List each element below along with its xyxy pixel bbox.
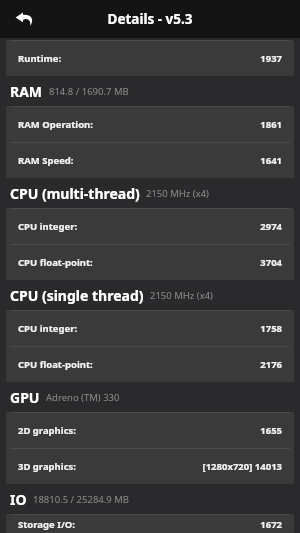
staticText: 1641 <box>260 154 282 167</box>
staticText: 3704 <box>260 256 282 269</box>
staticText: IO <box>10 490 27 509</box>
staticText: CPU float-point: <box>18 358 93 371</box>
staticText: RAM Operation: <box>18 118 93 131</box>
button[interactable]: CPU integer: <box>6 311 294 346</box>
button[interactable]: Back <box>8 3 40 35</box>
staticText: CPU integer: <box>18 220 78 233</box>
staticText: 2D graphics: <box>18 424 76 437</box>
staticText: 3D graphics: <box>18 460 76 473</box>
button[interactable]: RAM Operation: <box>6 107 294 142</box>
staticText: 1655 <box>260 424 282 437</box>
staticText: Storage I/O: <box>18 518 76 531</box>
staticText: CPU (single thread) <box>10 286 144 305</box>
button[interactable]: CPU float-point: <box>6 245 294 280</box>
staticText: 1937 <box>260 52 282 65</box>
staticText: CPU (multi-thread) <box>10 184 140 203</box>
staticText: RAM <box>10 82 43 101</box>
staticText: Details - v5.3 <box>107 10 193 28</box>
staticText: 2150 MHz (x4) <box>150 289 213 302</box>
staticText: 2974 <box>260 220 282 233</box>
button[interactable]: 3D graphics: <box>6 449 294 484</box>
staticText: 18810.5 / 25284.9 MB <box>33 493 130 506</box>
button[interactable]: RAM Speed: <box>6 143 294 178</box>
staticText: 1758 <box>260 322 282 335</box>
staticText: 1672 <box>260 518 282 531</box>
staticText: Runtime: <box>18 52 62 65</box>
staticText: CPU integer: <box>18 322 78 335</box>
staticText: 1861 <box>260 118 282 131</box>
button[interactable]: Storage I/O: <box>6 515 294 533</box>
staticText: CPU float-point: <box>18 256 93 269</box>
staticText: RAM Speed: <box>18 154 74 167</box>
staticText: 814.8 / 1690.7 MB <box>49 85 129 98</box>
staticText: [1280x720] 14013 <box>202 460 282 473</box>
button[interactable]: CPU float-point: <box>6 347 294 382</box>
staticText: 2150 MHz (x4) <box>146 187 209 200</box>
staticText: GPU <box>10 388 40 407</box>
button[interactable]: CPU integer: <box>6 209 294 244</box>
button[interactable]: 2D graphics: <box>6 413 294 448</box>
staticText: Adreno (TM) 330 <box>46 391 120 404</box>
button[interactable]: Runtime: <box>6 41 294 76</box>
staticText: 2176 <box>260 358 282 371</box>
